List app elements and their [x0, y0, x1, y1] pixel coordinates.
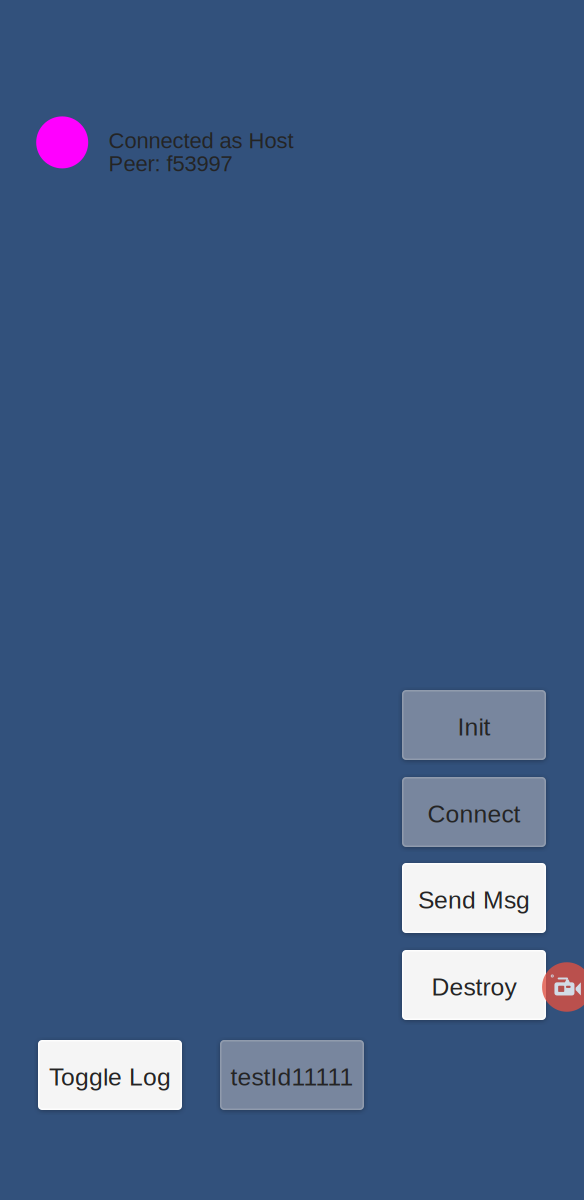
staticText: Send Msg [418, 886, 530, 914]
button[interactable]: Toggle Log [38, 1040, 182, 1110]
staticText: Init [457, 713, 490, 741]
button[interactable]: Destroy [402, 950, 546, 1020]
button[interactable]: Init [402, 690, 546, 760]
staticText: testId11111 [230, 1063, 353, 1091]
staticText: Connected as Host [109, 128, 294, 153]
button[interactable]: Start video call [542, 962, 584, 1012]
staticText: Toggle Log [49, 1063, 171, 1091]
button[interactable]: Connect [402, 777, 546, 847]
staticText: Destroy [431, 973, 516, 1001]
button[interactable]: testId11111 [220, 1040, 364, 1110]
staticText: Connect [427, 800, 520, 828]
staticText: Peer: f53997 [109, 151, 233, 176]
button[interactable]: Send Msg [402, 863, 546, 933]
